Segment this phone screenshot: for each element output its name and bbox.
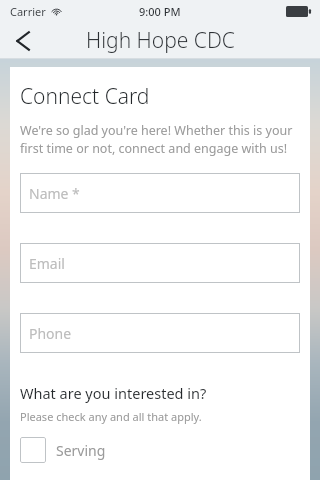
- button[interactable]: Serving: [20, 434, 300, 466]
- staticText: High Hope CDC: [86, 26, 235, 55]
- staticText: Email: [29, 254, 65, 273]
- staticText: Serving: [56, 441, 106, 460]
- button[interactable]: Email: [20, 243, 300, 283]
- staticText: Phone: [29, 324, 72, 343]
- staticText: Please check any and all that apply.: [20, 409, 202, 424]
- staticText: Connect Card: [20, 82, 150, 111]
- staticText: We're so glad you're here! Whether this …: [20, 122, 300, 157]
- staticText: What are you interested in?: [20, 383, 207, 403]
- button[interactable]: Back: [0, 22, 46, 59]
- staticText: 9:00 PM: [139, 4, 181, 19]
- staticText: Carrier: [10, 4, 46, 19]
- button[interactable]: Phone: [20, 313, 300, 353]
- button[interactable]: Name *: [20, 173, 300, 213]
- staticText: Name *: [29, 184, 80, 203]
